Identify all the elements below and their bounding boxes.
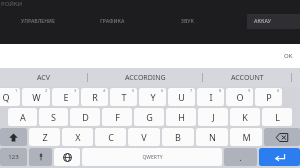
button[interactable]: Change language [54,148,80,166]
staticText: C [108,131,114,143]
button[interactable]: Z [29,128,60,146]
button[interactable]: QWERTY [82,148,222,166]
button[interactable]: Enter [259,148,300,166]
staticText: F [115,111,120,123]
button[interactable]: ЗВУК [150,14,225,29]
staticText: W [32,91,41,103]
staticText: H [178,111,185,123]
button[interactable]: T [110,88,137,106]
staticText: O [236,91,244,103]
button[interactable]: 123 [0,148,27,166]
button[interactable]: E [52,88,79,106]
button[interactable]: H [166,108,196,126]
staticText: 1 [15,88,18,93]
staticText: R [92,91,98,103]
button[interactable]: OK [284,52,293,60]
staticText: B [175,131,181,143]
button[interactable]: R [81,88,108,106]
staticText: G [146,111,153,123]
button[interactable]: . [224,148,257,166]
staticText: . [239,152,242,163]
button[interactable]: W [22,88,50,106]
button[interactable]: V [128,128,160,146]
staticText: M [242,131,251,143]
button[interactable]: Y [139,88,166,106]
staticText: 4 [103,88,106,93]
button[interactable]: Backspace [264,128,300,146]
staticText: 5 [132,88,135,93]
staticText: Q [2,91,10,103]
button[interactable]: ACV [0,68,87,87]
button[interactable]: P [255,88,282,106]
button[interactable]: АККАУ [225,14,300,29]
staticText: 3 [74,88,77,93]
staticText: I [209,91,213,103]
button[interactable]: U [168,88,195,106]
button[interactable]: A [8,108,37,126]
staticText: E [63,91,69,103]
button[interactable]: D [70,108,100,126]
staticText: ACV [37,73,50,83]
button[interactable]: N [196,128,228,146]
button[interactable]: X [62,128,93,146]
staticText: N [209,131,216,143]
button[interactable]: C [95,128,126,146]
staticText: D [82,111,89,123]
button[interactable]: L [262,108,292,126]
staticText: U [178,91,185,103]
staticText: АККАУ [254,18,271,25]
button[interactable]: ACCOUNT [203,68,291,87]
staticText: 2 [45,88,48,93]
staticText: 7 [190,88,193,93]
button[interactable]: J [198,108,228,126]
button[interactable]: O [226,88,253,106]
staticText: S [51,111,56,123]
button[interactable]: УПРАВЛЕНИЕ [0,14,75,29]
button[interactable]: Shift [0,128,27,146]
staticText: ACCORDING [125,73,166,83]
staticText: РОЙКИ [1,0,23,8]
staticText: X [75,131,81,143]
button[interactable]: ГРАФИКА [75,14,150,29]
staticText: 8 [219,88,222,93]
button[interactable]: ACCORDING [88,68,202,87]
button[interactable]: G [134,108,164,126]
button[interactable]: I [197,88,224,106]
staticText: OK [284,52,293,60]
staticText: K [242,111,248,123]
button[interactable]: K [230,108,260,126]
button[interactable]: B [162,128,194,146]
button[interactable]: F [102,108,132,126]
button[interactable]: Q [0,88,20,106]
staticText: A [20,111,26,123]
button[interactable]: M [230,128,262,146]
staticText: ГРАФИКА [100,18,125,25]
staticText: 9 [248,88,251,93]
staticText: 123 [8,153,19,161]
staticText: J [212,111,215,123]
staticText: 6 [161,88,164,93]
staticText: L [275,111,280,123]
staticText: Z [42,131,48,143]
staticText: УПРАВЛЕНИЕ [21,18,55,25]
staticText: QWERTY [142,154,163,161]
staticText: ЗВУК [181,18,194,25]
staticText: 0 [277,88,280,93]
button[interactable]: Voice input [29,148,52,166]
staticText: P [266,91,272,103]
staticText: Y [150,91,156,103]
button[interactable]: S [39,108,68,126]
staticText: V [141,131,147,143]
staticText: T [121,91,127,103]
staticText: ACCOUNT [231,73,264,83]
